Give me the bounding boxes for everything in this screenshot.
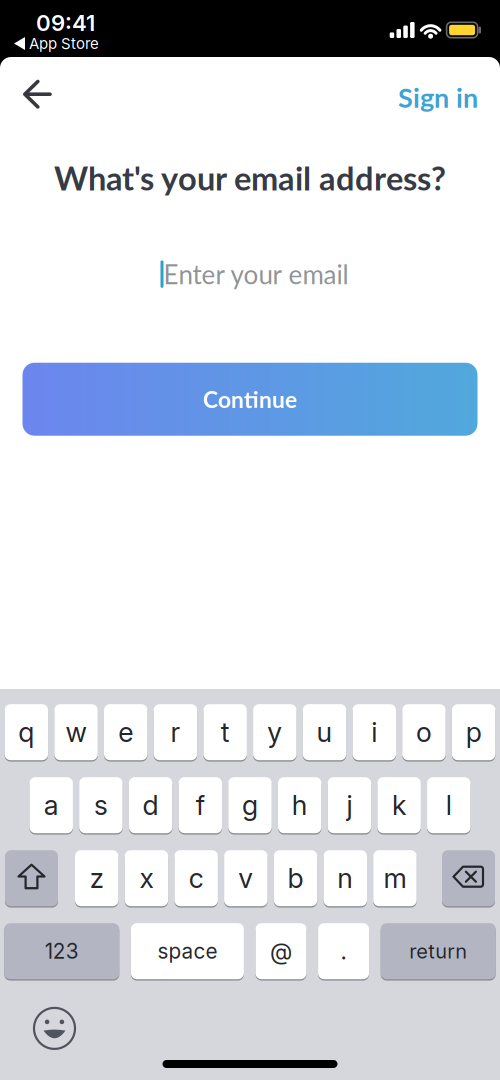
staticText: a [44, 789, 59, 822]
button[interactable]: return [381, 922, 496, 980]
staticText: App Store [29, 34, 99, 52]
button[interactable]: 123 [4, 922, 119, 980]
staticText: s [94, 789, 108, 822]
button[interactable]: j [328, 776, 371, 834]
button[interactable]: Sign in [398, 81, 478, 113]
staticText: f [196, 789, 205, 822]
staticText: r [170, 716, 180, 749]
button[interactable]: Emoji [34, 1008, 75, 1049]
staticText: e [118, 716, 133, 749]
staticText: v [238, 862, 253, 895]
button[interactable]: v [224, 849, 268, 907]
staticText: What's your email address? [54, 158, 446, 197]
staticText: k [392, 789, 406, 822]
button[interactable]: c [174, 849, 218, 907]
staticText: t [221, 716, 230, 749]
button[interactable]: @ [255, 922, 306, 980]
button[interactable]: d [129, 776, 172, 834]
staticText: i [371, 716, 377, 749]
staticText: p [466, 716, 482, 749]
button[interactable]: t [203, 703, 247, 761]
button[interactable]: h [278, 776, 321, 834]
button[interactable]: Shift [5, 849, 58, 907]
staticText: z [90, 862, 104, 895]
staticText: j [346, 789, 352, 822]
button[interactable]: App Store [14, 35, 99, 52]
button[interactable]: space [131, 922, 244, 980]
button[interactable]: k [377, 776, 421, 834]
staticText: w [65, 716, 86, 749]
staticText: Enter your email [163, 258, 348, 290]
button[interactable]: Back [21, 84, 49, 111]
button[interactable]: i [352, 703, 396, 761]
button[interactable]: a [29, 776, 73, 834]
button[interactable]: m [373, 849, 417, 907]
button[interactable]: f [179, 776, 222, 834]
staticText: g [242, 789, 258, 822]
button[interactable]: Delete [442, 849, 495, 907]
staticText: d [143, 789, 159, 822]
button[interactable]: w [54, 703, 98, 761]
button[interactable]: . [318, 922, 369, 980]
staticText: y [267, 716, 282, 749]
staticText: c [189, 862, 204, 895]
staticText: return [409, 939, 467, 963]
staticText: b [288, 862, 304, 895]
staticText: . [341, 937, 347, 965]
button[interactable]: n [323, 849, 367, 907]
staticText: m [383, 862, 406, 895]
staticText: h [292, 789, 308, 822]
staticText: o [416, 716, 432, 749]
staticText: Sign in [398, 81, 478, 113]
button[interactable]: e [104, 703, 147, 761]
button[interactable]: o [402, 703, 446, 761]
staticText: q [18, 716, 34, 749]
staticText: 09:41 [36, 9, 95, 36]
button[interactable]: Continue [22, 363, 477, 436]
button[interactable]: z [75, 849, 118, 907]
staticText: Continue [203, 385, 297, 413]
staticText: 123 [45, 939, 79, 964]
button[interactable]: q [5, 703, 48, 761]
button[interactable]: l [427, 776, 470, 834]
staticText: space [157, 939, 217, 964]
staticText: x [139, 862, 153, 895]
staticText: u [316, 716, 332, 749]
button[interactable]: p [452, 703, 495, 761]
staticText: @ [270, 937, 292, 965]
button[interactable]: u [303, 703, 346, 761]
button[interactable]: x [125, 849, 168, 907]
button[interactable]: b [274, 849, 317, 907]
button[interactable]: r [154, 703, 197, 761]
staticText: l [446, 789, 452, 822]
staticText: n [337, 862, 353, 895]
button[interactable]: Enter your email [156, 258, 344, 290]
button[interactable]: s [79, 776, 123, 834]
button[interactable]: y [253, 703, 297, 761]
button[interactable]: g [228, 776, 272, 834]
